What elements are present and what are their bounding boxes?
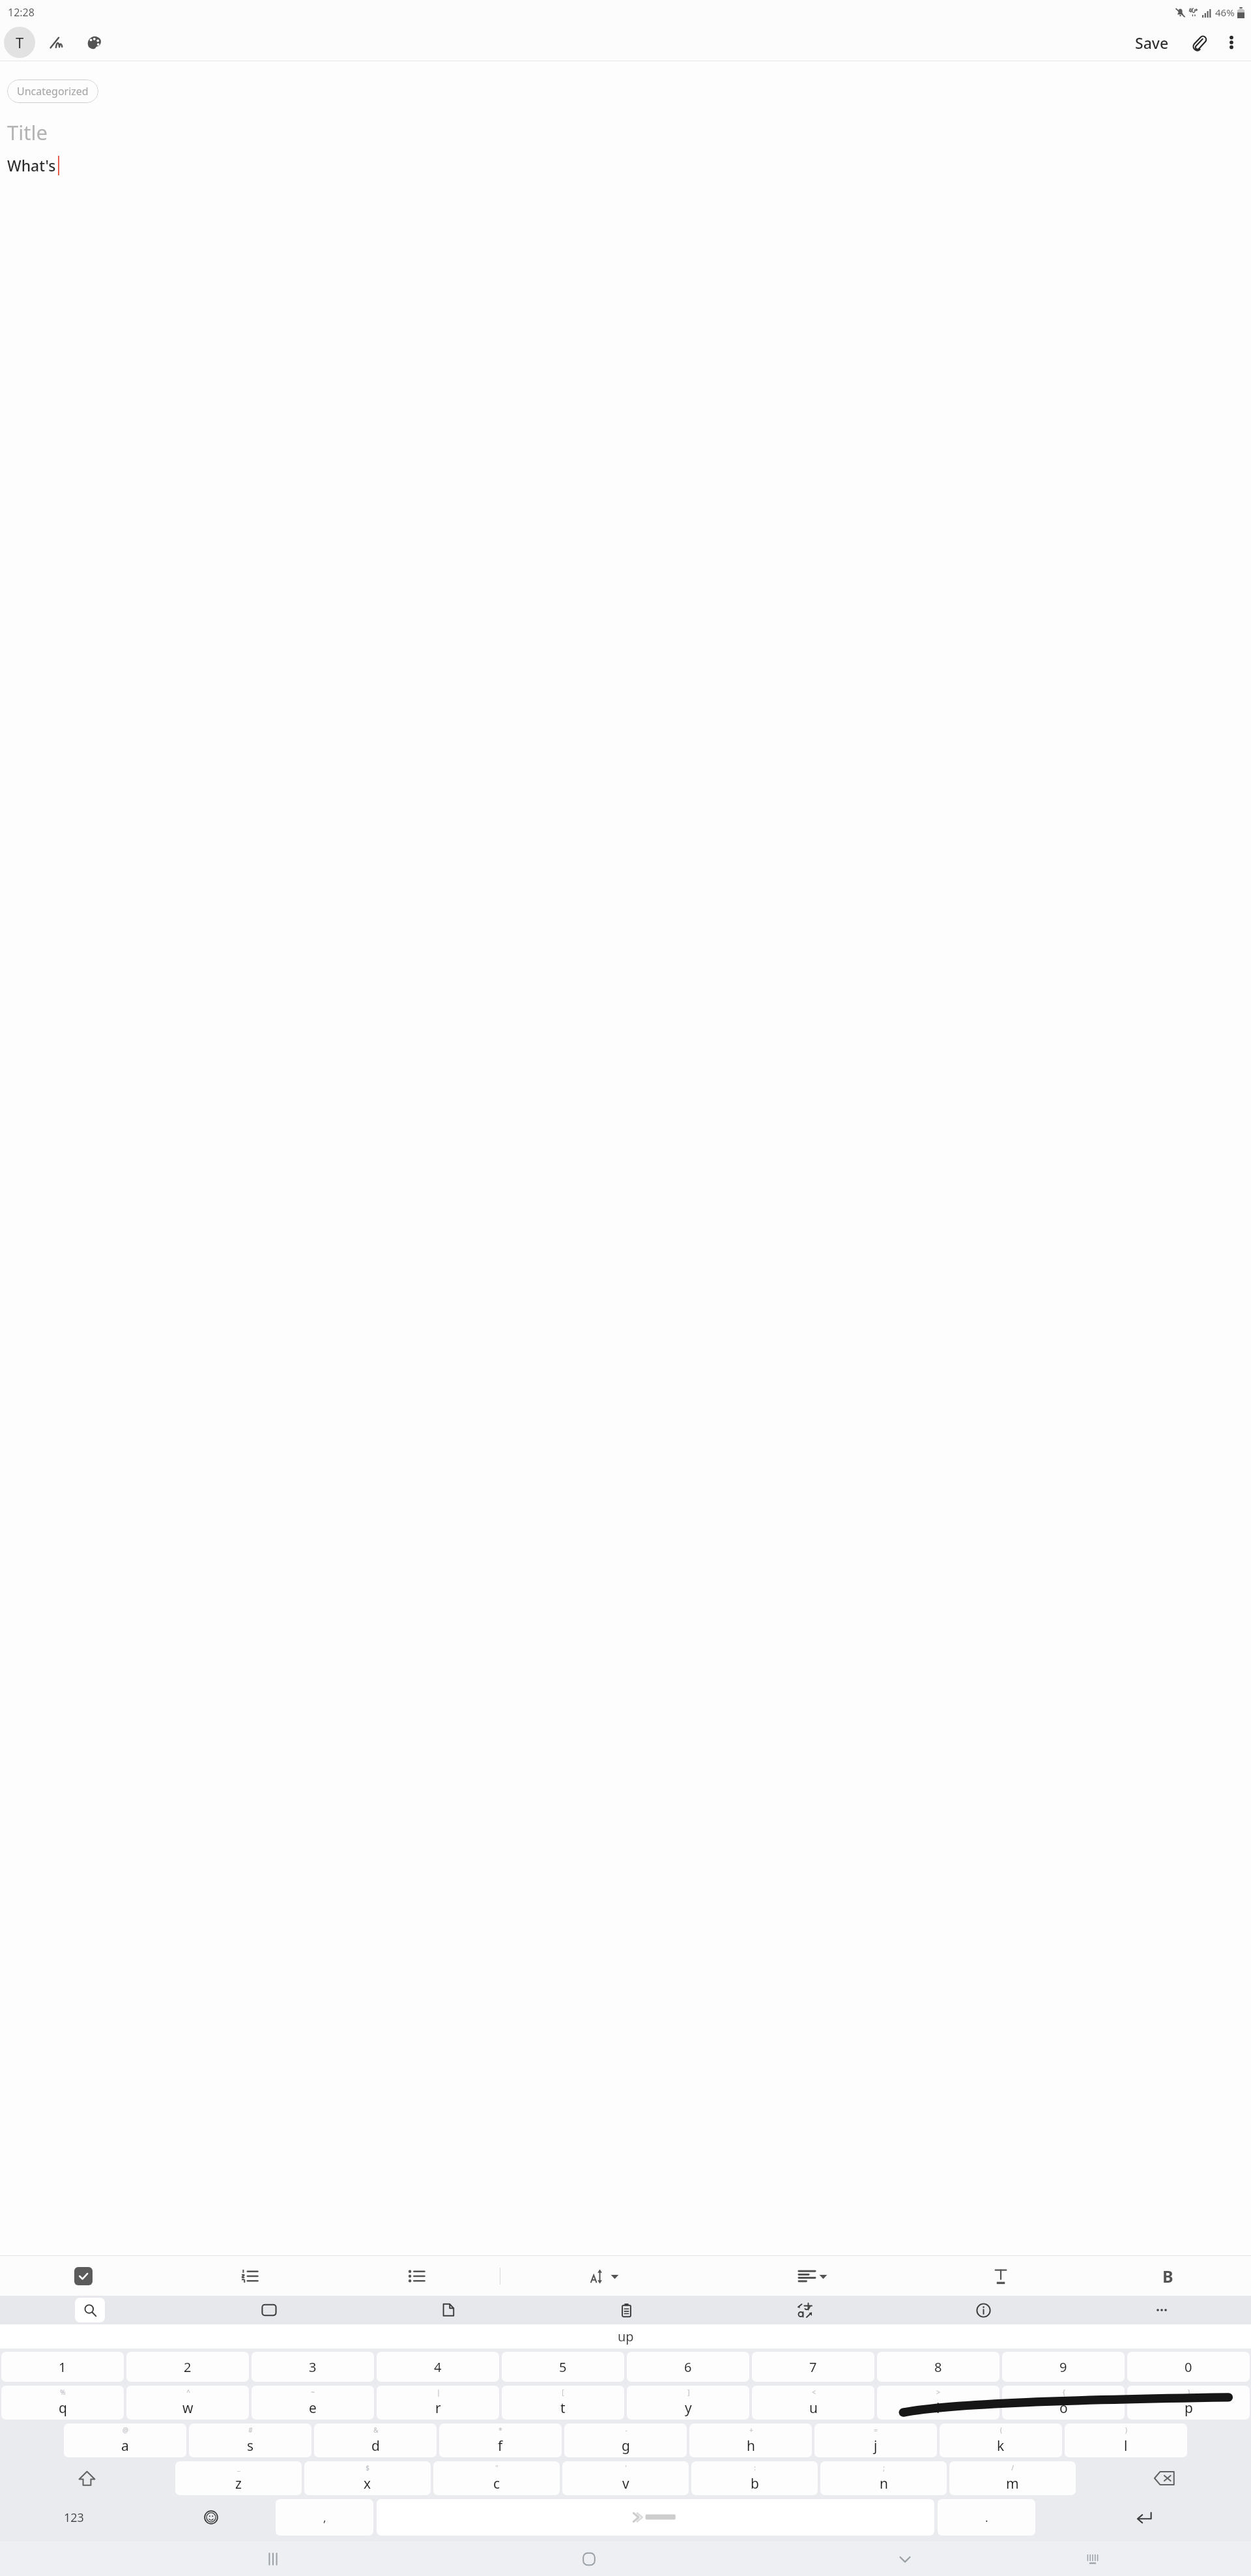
button[interactable]: Info [894,2296,1072,2324]
button[interactable]: { [1002,2386,1125,2420]
button[interactable]: 5 [502,2352,624,2382]
button[interactable]: ] [627,2386,749,2420]
button[interactable]: Numbered list [166,2256,333,2296]
button[interactable]: % [1,2386,124,2420]
button[interactable]: } [1127,2386,1250,2420]
button[interactable]: More options [1217,28,1246,57]
button[interactable]: Space [377,2499,934,2536]
button[interactable]: Home [574,2544,604,2574]
staticText: % [60,2388,66,2397]
button[interactable]: Switch keyboard [1078,2544,1108,2574]
staticText: ; [883,2463,885,2472]
button[interactable]: Recent apps [258,2544,288,2574]
button[interactable]: Save [1129,29,1175,57]
staticText: 9 [1059,2358,1067,2376]
button[interactable]: 4 [377,2352,499,2382]
staticText: x [364,2474,371,2493]
button[interactable]: Shift [0,2459,174,2497]
button[interactable]: Text mode [4,27,35,58]
staticText: { [1063,2388,1065,2397]
button[interactable]: < [752,2386,874,2420]
button[interactable]: 0 [1127,2352,1250,2382]
button[interactable]: ^ [126,2386,249,2420]
staticText: 7 [809,2358,817,2376]
staticText: r [435,2399,441,2418]
button[interactable]: : [691,2461,818,2495]
staticText: 6 [684,2358,692,2376]
button[interactable]: Checklist [0,2256,166,2296]
button[interactable]: Drawing palette [79,28,108,57]
button[interactable]: Title [0,119,1251,146]
staticText: 46% [1215,6,1235,19]
button[interactable]: $ [304,2461,431,2495]
button[interactable]: 1 [1,2352,124,2382]
staticText: t [560,2399,566,2418]
button[interactable]: # [189,2423,311,2457]
button[interactable]: + [689,2423,812,2457]
button[interactable]: . [938,2499,1035,2536]
button[interactable]: 3 [252,2352,374,2382]
staticText: j [874,2437,878,2455]
button[interactable]: Bulleted list [333,2256,500,2296]
button[interactable]: What's [0,155,1251,175]
button[interactable]: ; [820,2461,947,2495]
button[interactable]: _ [175,2461,302,2495]
button[interactable]: 9 [1002,2352,1125,2382]
button[interactable]: , [276,2499,373,2536]
staticText: g [622,2437,630,2455]
button[interactable]: Font size [500,2256,709,2296]
staticText: k [997,2437,1005,2455]
button[interactable]: Bold [1084,2256,1251,2296]
staticText: w [182,2399,194,2418]
staticText: e [309,2399,317,2418]
button[interactable]: up [605,2325,647,2348]
button[interactable]: Uncategorized [7,80,98,103]
button[interactable]: @ [64,2423,186,2457]
staticText: & [373,2425,379,2435]
button[interactable]: > [877,2386,999,2420]
button[interactable]: Enter [1037,2497,1251,2538]
staticText: 4 [434,2358,442,2376]
button[interactable]: & [314,2423,437,2457]
button[interactable]: Stickers [358,2296,537,2324]
button[interactable]: 123 [0,2497,147,2538]
button[interactable]: " [433,2461,560,2495]
button[interactable]: 2 [126,2352,249,2382]
button[interactable]: 7 [752,2352,874,2382]
staticText: } [1188,2388,1190,2397]
button[interactable]: More [1072,2296,1251,2324]
staticText: * [498,2425,502,2435]
staticText: 123 [64,2510,84,2526]
button[interactable]: * [439,2423,562,2457]
button[interactable]: Attach [1185,28,1213,57]
staticText: < [812,2388,816,2397]
button[interactable]: 8 [877,2352,999,2382]
staticText: a [121,2437,129,2455]
staticText: Uncategorized [17,84,89,98]
button[interactable]: GIF [179,2296,358,2324]
staticText: T [16,33,24,52]
staticText: " [495,2463,498,2472]
button[interactable]: ' [562,2461,689,2495]
button[interactable]: Backspace [1077,2459,1251,2497]
button[interactable]: Translate [715,2296,894,2324]
button[interactable]: ( [940,2423,1062,2457]
staticText: + [749,2425,753,2435]
button[interactable]: ~ [252,2386,374,2420]
button[interactable]: Alignment [709,2256,917,2296]
staticText: 8 [934,2358,942,2376]
button[interactable]: Underline [917,2256,1084,2296]
button[interactable]: / [949,2461,1076,2495]
button[interactable]: Hide keyboard [890,2544,920,2574]
button[interactable]: - [564,2423,687,2457]
button[interactable]: Emoji [147,2497,274,2538]
button[interactable]: 6 [627,2352,749,2382]
button[interactable]: ) [1065,2423,1187,2457]
button[interactable]: Search [75,2298,105,2322]
button[interactable]: Handwriting [43,28,72,57]
button[interactable]: | [377,2386,499,2420]
staticText: h [747,2437,755,2455]
button[interactable]: [ [502,2386,624,2420]
button[interactable]: = [814,2423,937,2457]
button[interactable]: Clipboard [537,2296,715,2324]
